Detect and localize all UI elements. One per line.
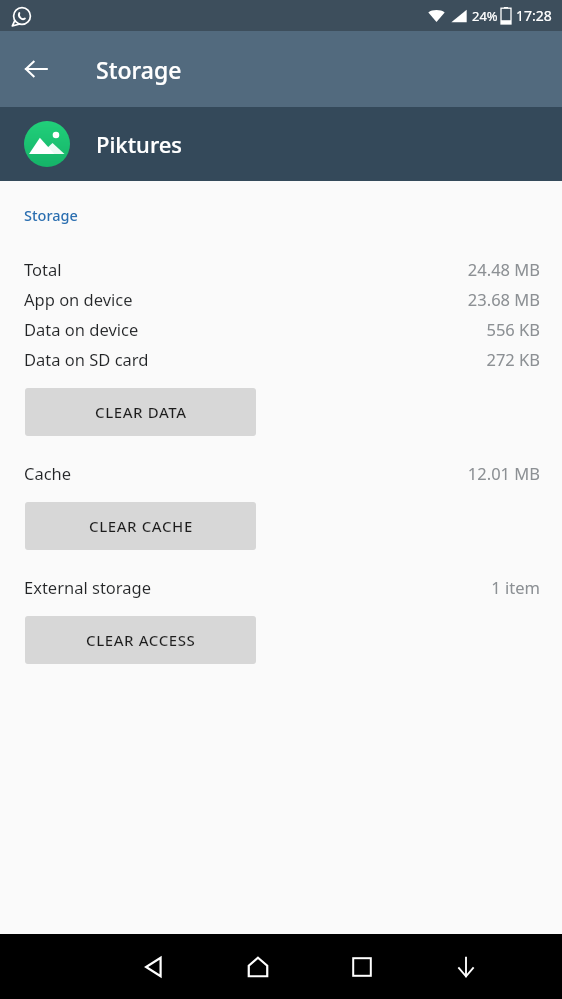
staticText: 24%	[472, 7, 498, 25]
staticText: External storage	[24, 576, 152, 598]
staticText: 556 KB	[486, 318, 540, 340]
button[interactable]: Back	[12, 45, 60, 93]
button[interactable]: App on device	[0, 284, 562, 314]
button[interactable]: Recent apps	[339, 944, 385, 990]
staticText: 17:28	[516, 6, 552, 25]
button[interactable]: CLEAR ACCESS	[25, 616, 256, 664]
staticText: Piktures	[96, 129, 183, 159]
staticText: 24.48 MB	[467, 258, 540, 280]
button[interactable]: Back	[131, 944, 177, 990]
staticText: 1 item	[491, 576, 540, 598]
staticText: CLEAR ACCESS	[86, 630, 196, 650]
staticText: Cache	[24, 462, 72, 484]
staticText: 23.68 MB	[467, 288, 540, 310]
button[interactable]: External storage	[0, 572, 562, 602]
button[interactable]: Total	[0, 254, 562, 284]
button[interactable]: Data on device	[0, 314, 562, 344]
staticText: CLEAR CACHE	[89, 516, 193, 536]
button[interactable]: CLEAR CACHE	[25, 502, 256, 550]
button[interactable]: CLEAR DATA	[25, 388, 256, 436]
button[interactable]: Hide keyboard	[443, 944, 489, 990]
staticText: Storage	[24, 205, 78, 225]
staticText: 12.01 MB	[467, 462, 540, 484]
button[interactable]: Cache	[0, 458, 562, 488]
button[interactable]: Data on SD card	[0, 344, 562, 374]
staticText: 272 KB	[486, 348, 540, 370]
staticText: Data on SD card	[24, 348, 149, 370]
staticText: Data on device	[24, 318, 139, 340]
staticText: App on device	[24, 288, 133, 310]
staticText: CLEAR DATA	[95, 402, 187, 422]
button[interactable]: Home	[235, 944, 281, 990]
staticText: Total	[24, 258, 62, 280]
staticText: Storage	[96, 54, 182, 85]
